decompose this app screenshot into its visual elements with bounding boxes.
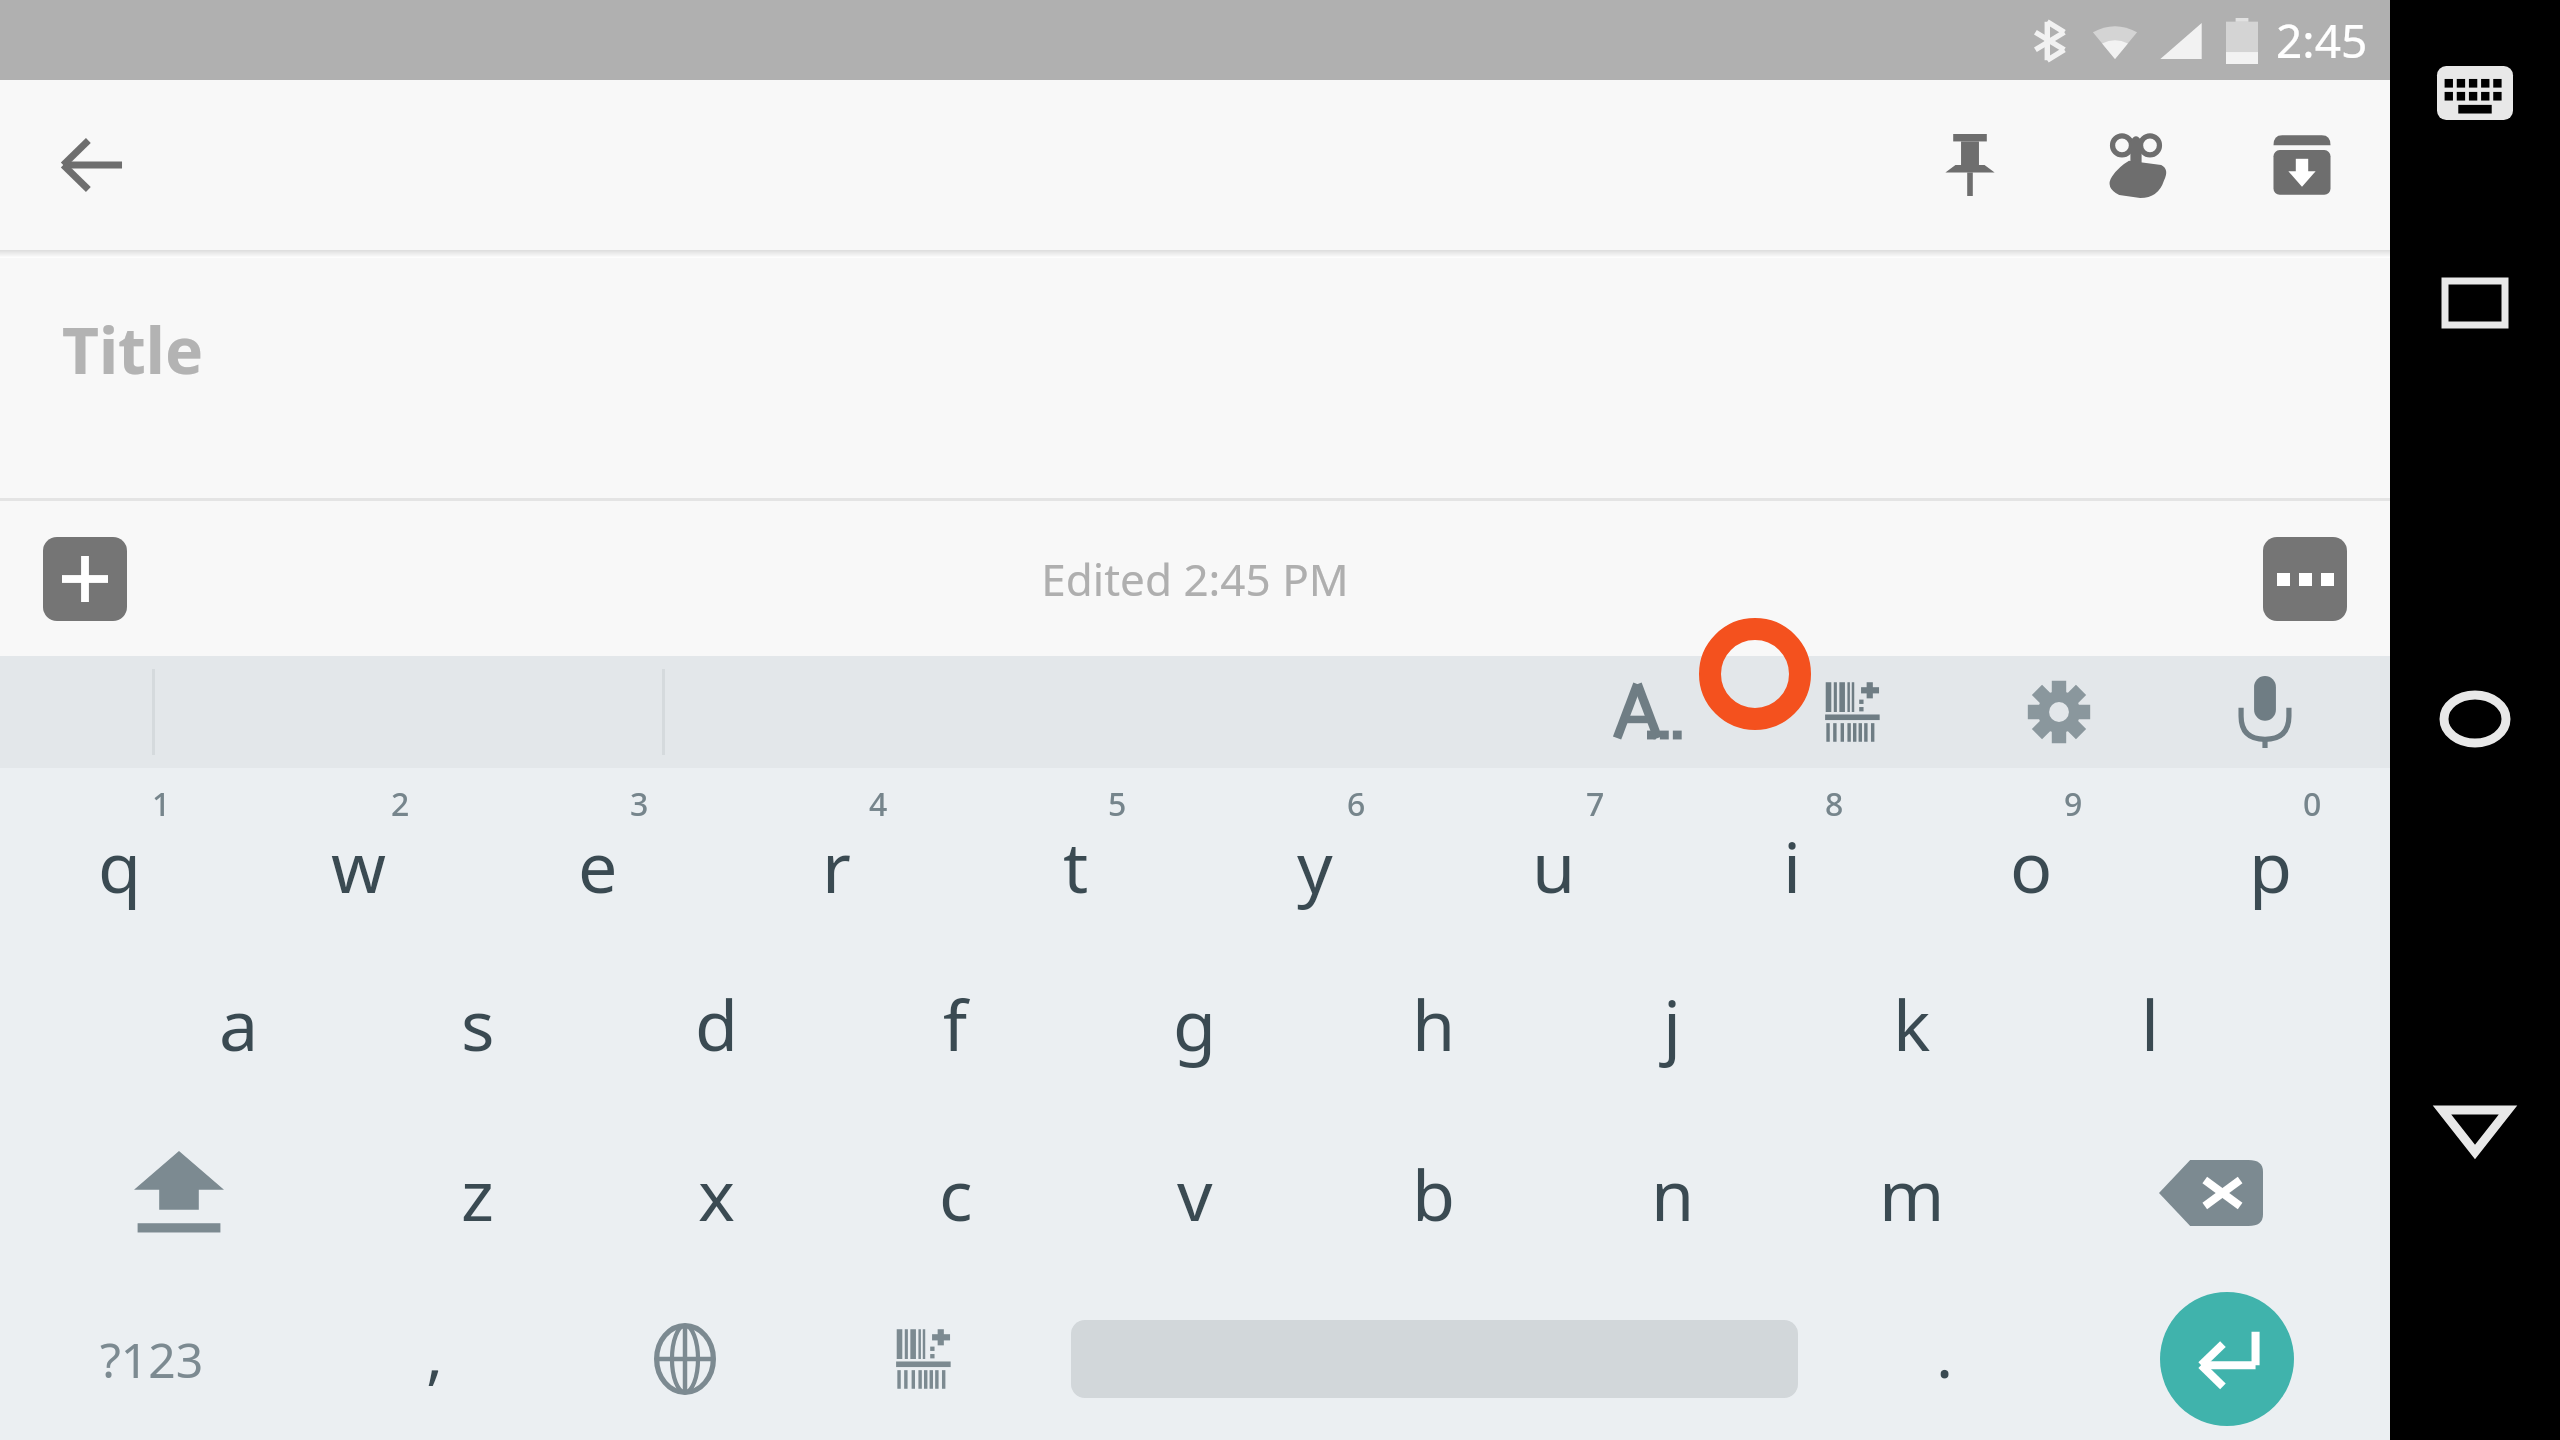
staticText: Title	[62, 306, 204, 393]
button[interactable]: ?123	[0, 1278, 304, 1440]
button[interactable]: More options	[2263, 537, 2347, 621]
button[interactable]: Voice input	[2210, 657, 2320, 767]
button[interactable]: s	[358, 938, 597, 1108]
staticText: w	[331, 818, 387, 913]
button[interactable]: .	[1825, 1278, 2064, 1440]
button[interactable]: 9	[1912, 768, 2151, 938]
staticText: 0	[2303, 782, 2322, 826]
staticText: g	[1173, 976, 1217, 1071]
button[interactable]: Change language	[565, 1278, 804, 1440]
button[interactable]: b	[1314, 1108, 1553, 1278]
button[interactable]: Stickers	[804, 1278, 1043, 1440]
staticText: 4	[869, 782, 888, 826]
staticText: j	[1663, 976, 1682, 1071]
staticText: f	[943, 976, 968, 1071]
button[interactable]: j	[1553, 938, 1792, 1108]
button[interactable]: m	[1792, 1108, 2031, 1278]
button[interactable]: Pin	[1912, 107, 2028, 223]
button[interactable]: 4	[717, 768, 956, 938]
button[interactable]: a	[119, 938, 358, 1108]
button[interactable]: x	[597, 1108, 836, 1278]
staticText: 1	[152, 782, 171, 826]
staticText: ,	[426, 1310, 444, 1397]
button[interactable]: Text editing	[1592, 657, 1702, 767]
button[interactable]: Archive	[2244, 107, 2360, 223]
staticText: h	[1412, 976, 1456, 1071]
button[interactable]: k	[1792, 938, 2031, 1108]
staticText: 5	[1108, 782, 1127, 826]
staticText: c	[939, 1146, 973, 1241]
staticText: 3	[630, 782, 649, 826]
button[interactable]: Home	[2420, 664, 2530, 774]
staticText: y	[1297, 818, 1333, 913]
button[interactable]: Settings	[2004, 657, 2114, 767]
staticText: 8	[1825, 782, 1844, 826]
button[interactable]: h	[1314, 938, 1553, 1108]
staticText: .	[1936, 1310, 1954, 1397]
button[interactable]: 0	[2151, 768, 2390, 938]
staticText: s	[461, 976, 495, 1071]
button[interactable]: Add	[43, 537, 127, 621]
button[interactable]: l	[2031, 938, 2270, 1108]
staticText: n	[1651, 1146, 1695, 1241]
staticText: ?123	[100, 1327, 204, 1392]
button[interactable]: d	[597, 938, 836, 1108]
button[interactable]: Shift	[0, 1108, 358, 1278]
staticText: q	[98, 818, 142, 913]
button[interactable]: 6	[1195, 768, 1434, 938]
button[interactable]: Stickers	[1798, 657, 1908, 767]
staticText: 9	[2064, 782, 2083, 826]
staticText: 6	[1347, 782, 1366, 826]
button[interactable]: Back	[38, 112, 144, 218]
button[interactable]: Back	[2420, 1076, 2530, 1186]
button[interactable]: Recents	[2420, 248, 2530, 358]
button[interactable]: 3	[478, 768, 717, 938]
staticText: z	[461, 1146, 494, 1241]
staticText: d	[695, 976, 739, 1071]
button[interactable]: ,	[304, 1278, 565, 1440]
staticText: t	[1063, 818, 1089, 913]
button[interactable]: Backspace	[2031, 1108, 2390, 1278]
staticText: o	[2010, 818, 2053, 913]
staticText: v	[1177, 1146, 1213, 1241]
staticText: Edited 2:45 PM	[1041, 549, 1349, 609]
button[interactable]: 5	[956, 768, 1195, 938]
button[interactable]: c	[836, 1108, 1075, 1278]
staticText: i	[1783, 818, 1802, 913]
staticText: p	[2249, 818, 2293, 913]
button[interactable]: 1	[0, 768, 239, 938]
button[interactable]: Space	[1043, 1278, 1825, 1440]
button[interactable]: v	[1075, 1108, 1314, 1278]
staticText: 2	[391, 782, 410, 826]
button[interactable]: 2	[239, 768, 478, 938]
staticText: 2:45	[2276, 9, 2368, 72]
staticText: x	[698, 1146, 736, 1241]
staticText: e	[578, 818, 618, 913]
staticText: u	[1532, 818, 1576, 913]
staticText: 7	[1586, 782, 1605, 826]
staticText: b	[1412, 1146, 1456, 1241]
button[interactable]: z	[358, 1108, 597, 1278]
staticText: r	[822, 818, 851, 913]
button[interactable]: Reminder	[2078, 107, 2194, 223]
button[interactable]: 7	[1434, 768, 1673, 938]
button[interactable]: n	[1553, 1108, 1792, 1278]
button[interactable]: Show keyboard	[2420, 38, 2530, 148]
staticText: k	[1893, 976, 1931, 1071]
button[interactable]: f	[836, 938, 1075, 1108]
staticText: l	[2141, 976, 2160, 1071]
staticText: a	[219, 976, 259, 1071]
button[interactable]: Enter	[2064, 1278, 2390, 1440]
staticText: m	[1879, 1146, 1945, 1241]
button[interactable]: g	[1075, 938, 1314, 1108]
button[interactable]: 8	[1673, 768, 1912, 938]
